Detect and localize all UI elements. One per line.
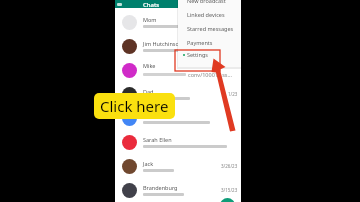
button[interactable]: Jim Hutchinson <box>115 34 241 58</box>
button[interactable]: Linked devices <box>178 7 241 21</box>
staticText: Brandenburg <box>143 184 178 191</box>
staticText: Mom <box>143 16 157 23</box>
staticText: Payments <box>187 39 213 46</box>
staticText: Linked devices <box>187 11 225 18</box>
staticText: conv/10001 ss... <box>188 71 232 78</box>
button[interactable]: Mike <box>115 58 241 82</box>
button[interactable]: Starred messages <box>178 21 241 35</box>
staticText: Sarah Ellen <box>143 136 172 143</box>
button[interactable]: Jack <box>115 154 241 178</box>
button[interactable]: New broadcast <box>178 0 241 7</box>
button[interactable]: Payments <box>178 35 241 49</box>
staticText: Settings <box>187 51 208 58</box>
button[interactable]: Mom <box>115 10 241 34</box>
staticText: 3/26/23 <box>221 163 238 169</box>
staticText: Click here <box>100 96 169 116</box>
staticText: 3/15/23 <box>221 187 238 193</box>
staticText: Dad <box>143 88 154 95</box>
staticText: Chats <box>143 1 160 9</box>
staticText: Mike <box>143 62 156 69</box>
staticText: Starred messages <box>187 25 234 32</box>
staticText: 1/23 <box>228 91 238 97</box>
button[interactable]: Camera <box>117 2 122 7</box>
button[interactable]: Lisa <box>115 106 241 130</box>
button[interactable]: Sarah Ellen <box>115 130 241 154</box>
button[interactable]: Settings <box>178 49 241 60</box>
staticText: Jim Hutchinson <box>143 40 183 47</box>
button[interactable]: Dad <box>115 82 241 106</box>
button[interactable]: Brandenburg <box>115 178 241 202</box>
staticText: Jack <box>143 160 154 167</box>
button[interactable]: Click here <box>94 93 175 119</box>
staticText: New broadcast <box>187 0 226 4</box>
button[interactable]: New chat <box>220 198 235 202</box>
